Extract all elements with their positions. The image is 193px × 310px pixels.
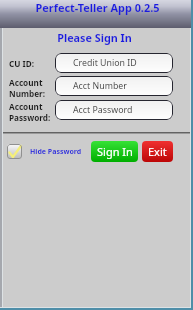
staticText: Password: <box>9 112 51 123</box>
staticText: Credit Union ID <box>73 57 137 69</box>
staticText: Exit <box>148 144 167 159</box>
staticText: Perfect-Teller App 0.2.5 <box>1 0 193 15</box>
staticText: Account <box>9 77 43 88</box>
staticText: Please Sign In <box>0 30 191 45</box>
staticText: CU ID: <box>9 58 35 69</box>
staticText: Acct Number <box>73 80 127 92</box>
button[interactable]: Acct Number <box>55 76 173 96</box>
staticText: Acct Password <box>73 104 133 116</box>
staticText: Number: <box>9 88 45 99</box>
button[interactable]: Credit Union ID <box>55 53 173 73</box>
button[interactable]: Exit <box>142 141 173 162</box>
button[interactable]: Hide Password <box>7 144 82 159</box>
staticText: Hide Password <box>30 147 82 157</box>
staticText: Account <box>9 101 43 112</box>
staticText: Sign In <box>97 144 133 159</box>
button[interactable]: Acct Password <box>55 100 173 120</box>
button[interactable]: Sign In <box>91 141 138 162</box>
